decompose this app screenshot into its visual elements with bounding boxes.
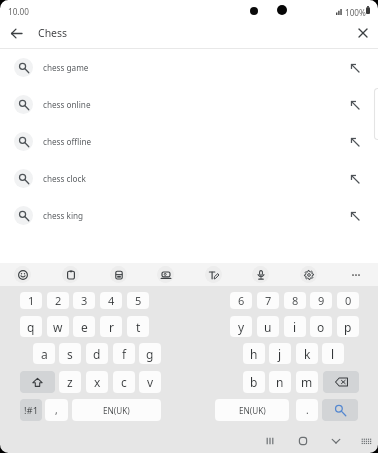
button[interactable]: s — [59, 343, 81, 364]
staticText: chess offline — [43, 136, 92, 147]
button[interactable]: z — [59, 371, 81, 393]
button[interactable]: Hide keyboard — [323, 429, 349, 453]
button[interactable]: j — [269, 343, 291, 364]
button[interactable]: Stickers — [157, 266, 174, 283]
staticText: q — [27, 319, 35, 335]
button[interactable]: c — [113, 371, 135, 393]
button[interactable]: o — [310, 316, 332, 337]
button[interactable]: n — [269, 371, 291, 393]
staticText: chess king — [43, 210, 84, 221]
button[interactable]: Voice input — [252, 266, 269, 283]
button[interactable]: w — [47, 316, 69, 337]
button[interactable]: Insert suggestion chess game — [340, 53, 370, 83]
staticText: EN(UK) — [239, 405, 266, 416]
button[interactable]: Clipboard — [62, 266, 79, 283]
button[interactable]: Back — [1, 18, 31, 48]
button[interactable]: EN(UK) — [72, 399, 161, 421]
button[interactable]: q — [20, 316, 42, 337]
button[interactable]: r — [100, 316, 122, 337]
staticText: 6 — [238, 293, 245, 308]
button[interactable]: chess king — [0, 197, 378, 234]
staticText: x — [94, 374, 101, 390]
button[interactable]: k — [296, 343, 318, 364]
button[interactable]: Insert suggestion chess offline — [340, 127, 370, 157]
staticText: m — [301, 374, 313, 390]
button[interactable]: 4 — [100, 292, 122, 309]
button[interactable]: x — [86, 371, 108, 393]
button[interactable]: d — [86, 343, 108, 364]
staticText: h — [250, 346, 258, 362]
button[interactable]: Recent apps — [257, 429, 283, 453]
button[interactable]: 6 — [230, 292, 252, 309]
button[interactable]: Clear search — [348, 18, 378, 48]
button[interactable]: Change keyboard — [353, 429, 378, 453]
button[interactable]: Insert suggestion chess clock — [340, 164, 370, 194]
button[interactable]: Shift — [20, 371, 55, 393]
button[interactable]: !#1 — [20, 399, 42, 421]
button[interactable]: t — [127, 316, 149, 337]
staticText: j — [278, 346, 282, 362]
button[interactable]: 7 — [257, 292, 279, 309]
button[interactable]: m — [296, 371, 318, 393]
staticText: . — [306, 403, 309, 417]
button[interactable]: y — [230, 316, 252, 337]
button[interactable]: i — [284, 316, 306, 337]
staticText: 1 — [28, 293, 35, 308]
button[interactable]: b — [243, 371, 265, 393]
staticText: , — [55, 403, 58, 417]
button[interactable]: 8 — [284, 292, 306, 309]
button[interactable]: EN(UK) — [215, 399, 289, 421]
button[interactable]: . — [296, 399, 318, 421]
staticText: e — [81, 319, 88, 335]
button[interactable]: chess game — [0, 49, 378, 86]
staticText: f — [122, 346, 127, 362]
staticText: z — [67, 374, 73, 390]
staticText: 5 — [135, 293, 142, 308]
button[interactable]: a — [33, 343, 55, 364]
staticText: 8 — [292, 293, 299, 308]
button[interactable]: Search — [322, 399, 358, 421]
staticText: Chess — [38, 26, 68, 40]
button[interactable]: e — [73, 316, 95, 337]
button[interactable]: l — [322, 343, 344, 364]
button[interactable]: 3 — [73, 292, 95, 309]
staticText: y — [238, 319, 245, 335]
button[interactable]: p — [337, 316, 359, 337]
button[interactable]: Text editing — [205, 266, 222, 283]
button[interactable]: chess online — [0, 86, 378, 123]
button[interactable]: f — [113, 343, 135, 364]
button[interactable]: h — [243, 343, 265, 364]
staticText: l — [331, 346, 335, 362]
button[interactable]: chess offline — [0, 123, 378, 160]
button[interactable]: Backspace — [323, 371, 359, 393]
button[interactable]: u — [257, 316, 279, 337]
button[interactable]: v — [139, 371, 161, 393]
staticText: t — [136, 319, 141, 335]
staticText: EN(UK) — [103, 405, 130, 416]
button[interactable]: Insert suggestion chess online — [340, 90, 370, 120]
staticText: d — [93, 346, 101, 362]
button[interactable]: Settings — [300, 266, 317, 283]
staticText: v — [147, 374, 154, 390]
button[interactable]: Emoji — [14, 266, 31, 283]
button[interactable]: 9 — [310, 292, 332, 309]
staticText: 4 — [108, 293, 115, 308]
button[interactable]: More — [347, 266, 364, 283]
button[interactable]: , — [45, 399, 68, 421]
button[interactable]: 1 — [20, 292, 42, 309]
staticText: chess online — [43, 99, 91, 110]
staticText: 100% — [345, 7, 366, 18]
button[interactable]: Home — [290, 429, 316, 453]
button[interactable]: 0 — [337, 292, 359, 309]
button[interactable]: g — [139, 343, 161, 364]
button[interactable]: 2 — [47, 292, 69, 309]
staticText: b — [250, 374, 258, 390]
button[interactable]: GIF — [110, 266, 127, 283]
button[interactable]: chess clock — [0, 160, 378, 197]
staticText: r — [109, 319, 114, 335]
staticText: chess clock — [43, 173, 86, 184]
staticText: !#1 — [24, 404, 39, 417]
staticText: k — [304, 346, 311, 362]
button[interactable]: Insert suggestion chess king — [340, 201, 370, 231]
button[interactable]: 5 — [127, 292, 149, 309]
